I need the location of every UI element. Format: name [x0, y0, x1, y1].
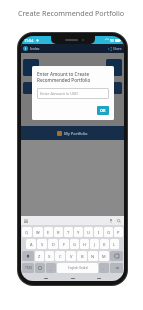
button[interactable]: E [44, 227, 53, 237]
button[interactable]: Search [117, 219, 121, 223]
staticText: O [107, 230, 111, 235]
staticText: N [91, 254, 95, 259]
staticText: Enter Amount to Create [37, 71, 90, 77]
button[interactable]: B [77, 251, 87, 261]
button[interactable]: Shift [22, 251, 34, 261]
button[interactable]: N [88, 251, 98, 261]
staticText: M [102, 254, 106, 259]
button[interactable]: K [100, 239, 109, 249]
staticText: 11:04 [24, 38, 34, 43]
staticText: A [30, 242, 33, 247]
button[interactable]: My Portfolio [21, 126, 124, 140]
staticText: Q [25, 230, 29, 235]
button[interactable]: A [26, 239, 36, 249]
staticText: U [87, 230, 90, 235]
button[interactable] [106, 59, 122, 76]
staticText: Create Recommended Portfolio [18, 8, 125, 18]
staticText: C [59, 254, 62, 259]
staticText: My Portfolio [64, 131, 88, 136]
button[interactable]: G [70, 239, 79, 249]
button[interactable] [106, 82, 122, 94]
button[interactable]: Keyboard menu [24, 219, 28, 223]
staticText: L [113, 242, 116, 247]
button[interactable] [23, 59, 39, 76]
button[interactable]: F [59, 239, 69, 249]
button[interactable]: V [66, 251, 76, 261]
staticText: G [73, 242, 76, 247]
button[interactable]: Z [35, 251, 44, 261]
staticText: F [63, 242, 66, 247]
button[interactable]: X [45, 251, 54, 261]
staticText: Z [38, 254, 41, 259]
staticText: J [94, 242, 96, 247]
button[interactable]: C [55, 251, 65, 261]
button[interactable]: I [94, 227, 103, 237]
staticText: W [36, 230, 40, 235]
staticText: B [81, 254, 84, 259]
button[interactable]: R [54, 227, 63, 237]
staticText: Enter Amount in USD [40, 91, 78, 96]
staticText: OK [100, 108, 106, 113]
staticText: X [48, 254, 51, 259]
staticText: D [52, 242, 55, 247]
staticText: H [83, 242, 86, 247]
button[interactable]: Q [22, 227, 32, 237]
staticText: V [70, 254, 73, 259]
button[interactable]: Y [74, 227, 83, 237]
button[interactable]: D [48, 239, 58, 249]
staticText: E [47, 230, 50, 235]
button[interactable]: L [110, 239, 119, 249]
button[interactable]: Backspace [110, 251, 123, 261]
button[interactable]: Voice input [109, 219, 113, 223]
staticText: S [41, 242, 44, 247]
button[interactable] [23, 82, 39, 94]
button[interactable]: S [37, 239, 47, 249]
button[interactable]: Symbols [22, 263, 34, 273]
button[interactable]: O [104, 227, 113, 237]
button[interactable]: Enter [110, 263, 123, 273]
button[interactable]: Comma [46, 263, 56, 273]
button[interactable]: U [84, 227, 93, 237]
button[interactable]: M [99, 251, 109, 261]
button[interactable]: OK [97, 106, 109, 115]
button[interactable]: T [64, 227, 73, 237]
staticText: , [50, 266, 52, 271]
staticText: T [67, 230, 70, 235]
staticText: R [57, 230, 60, 235]
staticText: . [103, 266, 105, 271]
button[interactable]: Share [108, 47, 112, 51]
button[interactable]: W [33, 227, 43, 237]
staticText: Index [30, 46, 40, 51]
button[interactable]: Profile [23, 46, 28, 51]
staticText: Share [113, 47, 122, 51]
button[interactable]: Emoji [35, 263, 45, 273]
button[interactable]: J [90, 239, 99, 249]
staticText: English (India) [68, 266, 88, 270]
button[interactable]: H [80, 239, 89, 249]
staticText: Recommended Portfolio [37, 77, 91, 83]
staticText: ?123 [25, 266, 32, 270]
staticText: P [117, 230, 120, 235]
button[interactable]: P [114, 227, 123, 237]
staticText: i [25, 47, 26, 51]
button[interactable]: English (India) [57, 263, 98, 273]
staticText: Y [77, 230, 80, 235]
button[interactable]: Enter Amount in USD [37, 88, 109, 99]
staticText: K [103, 242, 106, 247]
staticText: 90 [110, 38, 114, 43]
button[interactable]: Period [99, 263, 109, 273]
staticText: I [98, 230, 100, 235]
